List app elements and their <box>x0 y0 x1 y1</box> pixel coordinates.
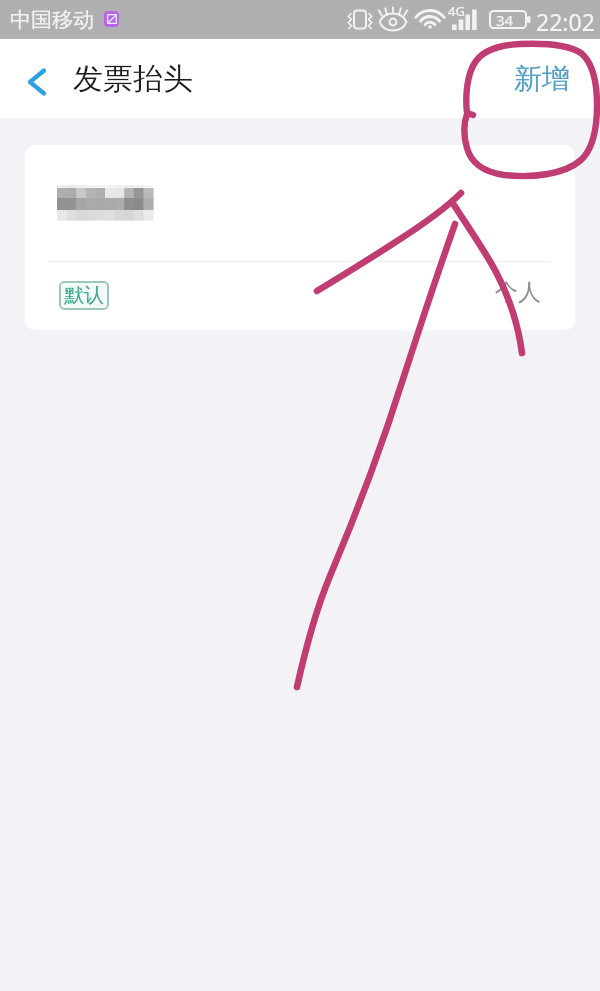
staticText: 中国移动 <box>10 7 94 33</box>
button[interactable]: Back <box>0 39 70 118</box>
staticText: 34 <box>496 10 514 30</box>
staticText: 默认 <box>64 283 104 308</box>
staticText: 新增 <box>514 61 570 96</box>
button[interactable]: 默认 <box>25 145 575 330</box>
staticText: 发票抬头 <box>73 60 193 98</box>
staticText: 个人 <box>495 278 541 307</box>
staticText: 22:02 <box>536 6 595 37</box>
button[interactable]: 新增 <box>499 39 584 118</box>
staticText: 4G <box>448 2 465 20</box>
button[interactable]: 默认 <box>59 281 109 310</box>
